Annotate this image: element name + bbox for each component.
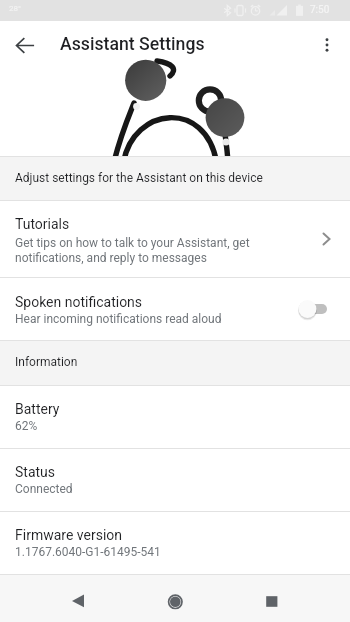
staticText: Get tips on how to talk to your Assistan… bbox=[15, 236, 250, 265]
staticText: Adjust settings for the Assistant on thi… bbox=[15, 171, 263, 185]
button[interactable]: Back bbox=[58, 581, 98, 621]
button[interactable]: Spoken notifications bbox=[0, 278, 350, 340]
staticText: Assistant Settings bbox=[60, 34, 205, 55]
button[interactable]: Recents bbox=[252, 581, 292, 621]
staticText: Firmware version bbox=[15, 527, 123, 543]
staticText: Spoken notifications bbox=[15, 294, 143, 310]
staticText: Status bbox=[15, 464, 56, 480]
staticText: Tutorials bbox=[15, 216, 70, 232]
staticText: 62% bbox=[15, 419, 38, 433]
button[interactable]: Battery bbox=[0, 386, 350, 448]
button[interactable]: Tutorials bbox=[0, 201, 350, 277]
button[interactable]: More options bbox=[307, 25, 347, 65]
button[interactable]: Firmware version bbox=[0, 512, 350, 574]
staticText: Battery bbox=[15, 401, 60, 417]
staticText: 1.1767.6040-G1-61495-541 bbox=[15, 545, 161, 559]
button[interactable]: Home bbox=[155, 581, 195, 621]
staticText: Hear incoming notifications read aloud bbox=[15, 312, 222, 326]
staticText: 7:50 bbox=[310, 4, 330, 16]
button[interactable]: Back bbox=[4, 25, 44, 65]
staticText: 28° bbox=[9, 4, 21, 13]
button[interactable]: Status bbox=[0, 449, 350, 511]
staticText: Information bbox=[15, 355, 78, 369]
staticText: Connected bbox=[15, 482, 73, 496]
